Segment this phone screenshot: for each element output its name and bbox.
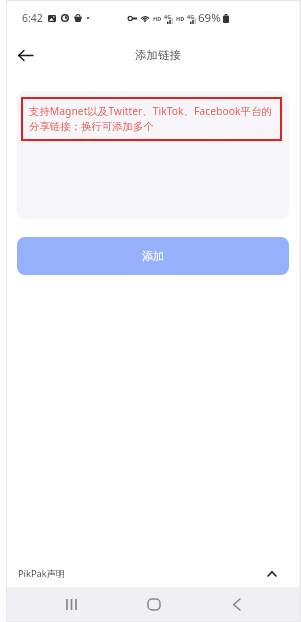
staticText: 4G — [187, 13, 195, 20]
staticText: 6:42 — [22, 11, 43, 25]
button[interactable]: PikPak声明 — [7, 555, 300, 587]
staticText: 添加 — [142, 249, 164, 263]
button[interactable]: Back — [7, 37, 43, 73]
button[interactable]: Home — [134, 587, 174, 621]
staticText: 添加链接 — [135, 48, 181, 62]
staticText: HD — [153, 15, 162, 22]
button[interactable]: 添加 — [17, 237, 289, 275]
button[interactable]: Back — [216, 587, 256, 621]
staticText: 支持Magnet以及Twitter、TikTok、Facebook平台的分享链接… — [29, 104, 274, 133]
staticText: 69% — [198, 10, 221, 26]
button[interactable]: Recent apps — [51, 587, 91, 621]
staticText: HD — [176, 15, 185, 22]
staticText: 4G — [164, 13, 172, 20]
staticText: PikPak声明 — [18, 567, 66, 580]
